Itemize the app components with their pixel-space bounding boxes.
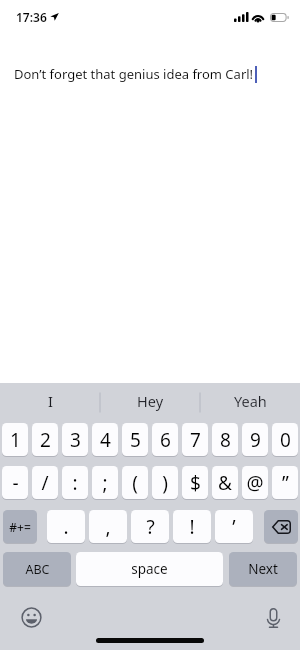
button[interactable]: ): [152, 466, 178, 499]
staticText: ”: [282, 470, 289, 496]
button[interactable]: Emoji keyboard: [18, 604, 44, 630]
button[interactable]: ;: [92, 466, 118, 499]
button[interactable]: &: [212, 466, 238, 499]
button[interactable]: 5: [122, 423, 148, 456]
staticText: ABC: [25, 561, 50, 578]
button[interactable]: -: [2, 466, 28, 499]
staticText: &: [218, 470, 232, 496]
button[interactable]: 2: [32, 423, 58, 456]
staticText: 5: [130, 427, 141, 453]
button[interactable]: ’: [215, 510, 253, 543]
staticText: 17:36: [16, 9, 47, 25]
staticText: 1: [10, 427, 21, 453]
staticText: 2: [40, 427, 51, 453]
staticText: Hey: [137, 391, 164, 411]
staticText: I: [48, 391, 53, 411]
button[interactable]: :: [62, 466, 88, 499]
button[interactable]: 8: [212, 423, 238, 456]
staticText: Yeah: [234, 391, 267, 411]
staticText: /: [41, 470, 49, 496]
button[interactable]: Dictation: [260, 605, 286, 631]
button[interactable]: Hey: [100, 383, 200, 423]
staticText: .: [63, 514, 69, 540]
staticText: ,: [105, 514, 111, 540]
button[interactable]: Yeah: [200, 383, 300, 423]
button[interactable]: I: [0, 383, 100, 423]
button[interactable]: #+=: [3, 510, 37, 543]
button[interactable]: 1: [2, 423, 28, 456]
staticText: 9: [250, 427, 261, 453]
button[interactable]: ABC: [3, 552, 71, 586]
button[interactable]: $: [182, 466, 208, 499]
staticText: 0: [280, 427, 291, 453]
button[interactable]: 9: [242, 423, 268, 456]
staticText: space: [131, 560, 168, 578]
staticText: !: [189, 514, 195, 540]
button[interactable]: space: [76, 552, 223, 586]
button[interactable]: 3: [62, 423, 88, 456]
staticText: Don’t forget that genius idea from Carl!: [14, 65, 254, 83]
button[interactable]: Delete: [264, 510, 298, 543]
button[interactable]: !: [173, 510, 211, 543]
button[interactable]: 0: [272, 423, 298, 456]
button[interactable]: (: [122, 466, 148, 499]
staticText: 6: [160, 427, 171, 453]
button[interactable]: .: [47, 510, 85, 543]
staticText: 4: [100, 427, 111, 453]
staticText: :: [72, 470, 78, 496]
staticText: 7: [190, 427, 201, 453]
staticText: -: [12, 470, 19, 496]
staticText: Next: [248, 560, 278, 578]
staticText: ’: [232, 514, 236, 540]
staticText: 3: [70, 427, 81, 453]
button[interactable]: /: [32, 466, 58, 499]
button[interactable]: ”: [272, 466, 298, 499]
button[interactable]: ,: [89, 510, 127, 543]
button[interactable]: @: [242, 466, 268, 499]
staticText: @: [246, 470, 264, 496]
staticText: $: [190, 470, 201, 496]
button[interactable]: 7: [182, 423, 208, 456]
staticText: #+=: [9, 519, 31, 535]
button[interactable]: 4: [92, 423, 118, 456]
button[interactable]: ?: [131, 510, 169, 543]
staticText: ;: [102, 470, 108, 496]
button[interactable]: Next: [229, 552, 297, 586]
staticText: ?: [146, 514, 155, 540]
staticText: ): [162, 470, 168, 496]
staticText: (: [132, 470, 138, 496]
staticText: 8: [220, 427, 231, 453]
button[interactable]: 6: [152, 423, 178, 456]
